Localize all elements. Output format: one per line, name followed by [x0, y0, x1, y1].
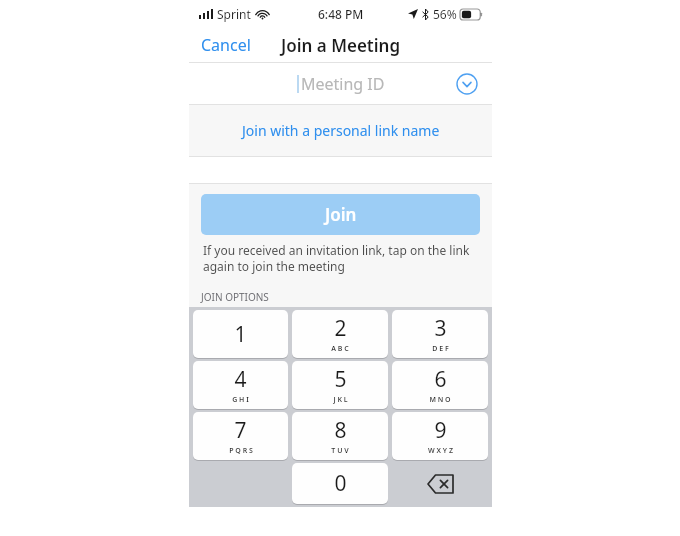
- staticText: 5: [334, 365, 347, 394]
- staticText: 6: [434, 365, 447, 394]
- button[interactable]: 8: [292, 412, 388, 460]
- staticText: JOIN OPTIONS: [201, 290, 269, 304]
- staticText: Meeting ID: [301, 73, 385, 95]
- button[interactable]: 7: [193, 412, 288, 460]
- button[interactable]: 6: [392, 361, 488, 409]
- staticText: J K L: [333, 395, 348, 405]
- staticText: 9: [434, 416, 447, 445]
- button[interactable]: 5: [292, 361, 388, 409]
- staticText: Sprint: [217, 6, 251, 22]
- button[interactable]: Join with a personal link name: [189, 105, 492, 156]
- button[interactable]: 1: [193, 310, 288, 358]
- staticText: 2: [334, 314, 347, 343]
- button[interactable]: Join: [201, 194, 480, 235]
- staticText: 4: [234, 365, 247, 394]
- staticText: W X Y Z: [428, 446, 453, 456]
- staticText: 56%: [433, 6, 457, 22]
- staticText: G H I: [232, 395, 249, 405]
- staticText: Join a Meeting: [281, 34, 401, 57]
- staticText: If you received an invitation link, tap …: [203, 242, 478, 274]
- button[interactable]: Delete: [392, 463, 488, 504]
- button[interactable]: Cancel: [189, 30, 263, 60]
- staticText: 1: [234, 320, 247, 349]
- staticText: 3: [434, 314, 447, 343]
- staticText: 6:48 PM: [318, 6, 364, 22]
- staticText: M N O: [429, 395, 451, 405]
- staticText: A B C: [331, 344, 349, 354]
- staticText: Join with a personal link name: [242, 121, 440, 140]
- button[interactable]: 0: [292, 463, 388, 504]
- button[interactable]: Show recent meeting IDs: [456, 73, 478, 95]
- button[interactable]: Meeting ID: [189, 63, 492, 104]
- staticText: Cancel: [201, 34, 251, 56]
- staticText: 0: [334, 469, 347, 498]
- staticText: 7: [234, 416, 247, 445]
- button[interactable]: 2: [292, 310, 388, 358]
- staticText: Join: [325, 203, 357, 226]
- button[interactable]: 3: [392, 310, 488, 358]
- button[interactable]: 9: [392, 412, 488, 460]
- staticText: D E F: [432, 344, 449, 354]
- staticText: T U V: [331, 446, 349, 456]
- staticText: P Q R S: [229, 446, 253, 456]
- button[interactable]: 4: [193, 361, 288, 409]
- staticText: 8: [334, 416, 347, 445]
